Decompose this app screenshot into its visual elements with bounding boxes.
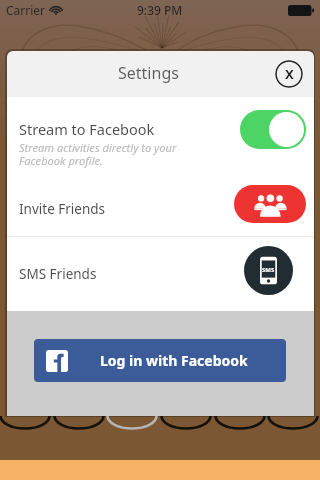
button[interactable]: SMS Friends [244,246,293,295]
button[interactable]: Log in with Facebook [34,339,286,382]
button[interactable]: Stream to Facebook [7,97,314,185]
staticText: Stream to Facebook [19,119,155,139]
button[interactable]: Invite Friends [234,185,306,223]
staticText: SMS Friends [19,265,97,283]
button[interactable]: Stream to Facebook toggle [240,110,306,149]
button[interactable]: SMS Friends [7,237,314,311]
staticText: X [285,65,294,83]
button[interactable]: Close [275,60,303,88]
staticText: Stream activities directly to your Faceb… [19,140,177,168]
staticText: Carrier [6,2,46,18]
staticText: SMS [262,266,275,274]
button[interactable]: Invite Friends [7,185,314,236]
staticText: Log in with Facebook [100,351,248,370]
staticText: Settings [118,62,179,84]
staticText: Invite Friends [19,200,106,218]
staticText: 9:39 PM [137,2,183,18]
